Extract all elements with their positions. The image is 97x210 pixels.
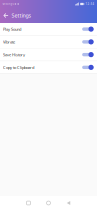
staticText: Vibrate (3, 39, 15, 44)
staticText: Save History (3, 52, 25, 57)
button[interactable]: Back (58, 196, 78, 210)
staticText: Settings (11, 12, 31, 19)
button[interactable]: Save History (0, 48, 97, 61)
staticText: settings (2, 2, 13, 6)
button[interactable]: Back (0, 8, 11, 23)
button[interactable]: Vibrate (0, 36, 97, 49)
staticText: Copy to Clipboard (3, 65, 34, 70)
staticText: Play Sound (3, 26, 21, 32)
button[interactable]: Copy to Clipboard (0, 61, 97, 74)
button[interactable]: Play Sound (0, 23, 97, 36)
staticText: 12:34 (86, 2, 95, 6)
button[interactable]: Recents (18, 196, 38, 210)
button[interactable]: Home (38, 196, 58, 210)
